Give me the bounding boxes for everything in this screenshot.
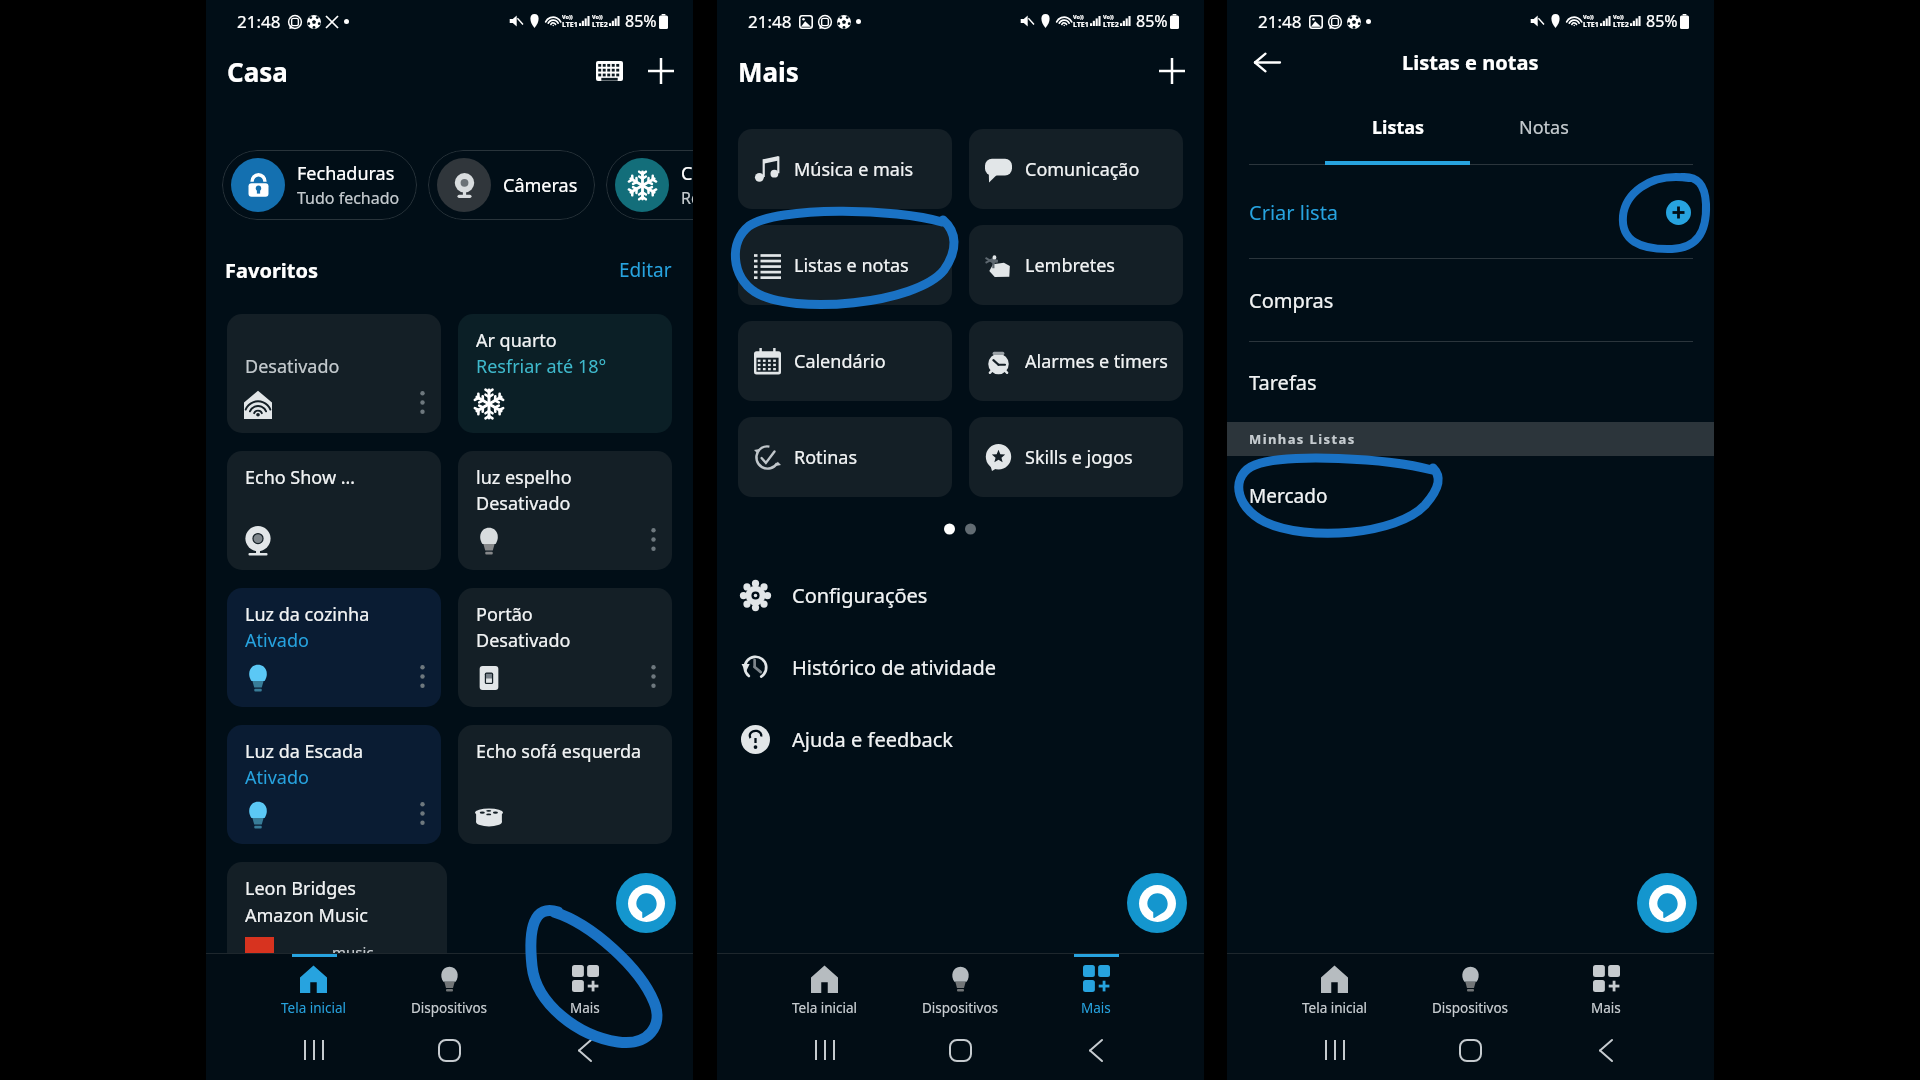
staticText: Vo)): [1583, 13, 1594, 20]
button[interactable]: Tarefas: [1227, 342, 1714, 422]
staticText: Música e mais: [794, 157, 914, 182]
button[interactable]: Câmeras: [428, 150, 595, 220]
button[interactable]: Home: [892, 1024, 1028, 1076]
button[interactable]: Home: [1402, 1024, 1538, 1076]
staticText: Luz da Escada: [245, 739, 364, 764]
button[interactable]: Mais: [1028, 954, 1164, 1024]
staticText: Alarmes e timers: [1025, 349, 1168, 374]
button[interactable]: Leon Bridges: [227, 862, 447, 981]
button[interactable]: Lembretes: [969, 225, 1183, 305]
staticText: Ativado: [245, 628, 309, 653]
button[interactable]: Luz da cozinha: [227, 588, 441, 707]
button[interactable]: Desativado: [227, 314, 441, 433]
button[interactable]: Música e mais: [738, 129, 952, 209]
staticText: Vo)): [592, 13, 603, 20]
button[interactable]: Recents: [246, 1024, 381, 1076]
staticText: Ar quarto: [476, 328, 557, 353]
button[interactable]: Home: [381, 1024, 517, 1076]
staticText: LTE2: [1613, 20, 1629, 30]
button[interactable]: Add: [643, 53, 679, 89]
button[interactable]: Compras: [1227, 259, 1714, 342]
button[interactable]: Rotinas: [738, 417, 952, 497]
staticText: Mais: [1591, 999, 1621, 1017]
staticText: Dispositivos: [1432, 999, 1509, 1017]
button[interactable]: Histórico de atividade: [717, 631, 1204, 703]
button[interactable]: Listas e notas: [738, 225, 952, 305]
staticText: Listas e notas: [794, 253, 909, 278]
staticText: Echo Show …: [245, 465, 355, 490]
button[interactable]: Back: [1028, 1024, 1164, 1076]
staticText: LTE2: [1103, 20, 1119, 30]
button[interactable]: Skills e jogos: [969, 417, 1183, 497]
button[interactable]: Alexa: [616, 873, 676, 933]
button[interactable]: Climatização: [606, 150, 693, 220]
staticText: Resfriar: [681, 187, 693, 209]
button[interactable]: Listas: [1326, 106, 1471, 148]
staticText: Mais: [570, 999, 600, 1017]
button[interactable]: Dispositivos: [1402, 954, 1538, 1024]
button[interactable]: Recents: [1267, 1024, 1402, 1076]
staticText: Editar: [619, 257, 672, 283]
staticText: Lembretes: [1025, 253, 1115, 278]
staticText: Luz da cozinha: [245, 602, 370, 627]
staticText: Desativado: [245, 354, 340, 379]
staticText: Climatização: [681, 161, 693, 186]
button[interactable]: Recents: [757, 1024, 892, 1076]
button[interactable]: Ar quarto: [458, 314, 672, 433]
button[interactable]: Luz da Escada: [227, 725, 441, 844]
button[interactable]: Mercado: [1227, 456, 1714, 536]
button[interactable]: Calendário: [738, 321, 952, 401]
staticText: Dispositivos: [411, 999, 488, 1017]
button[interactable]: Tela inicial: [246, 954, 381, 1024]
staticText: Vo)): [1103, 13, 1114, 20]
staticText: luz espelho: [476, 465, 572, 490]
button[interactable]: Tela inicial: [757, 954, 892, 1024]
staticText: Configurações: [792, 582, 928, 609]
button[interactable]: Tela inicial: [1267, 954, 1402, 1024]
button[interactable]: Alexa: [1637, 873, 1697, 933]
staticText: 21:48: [237, 10, 281, 33]
staticText: Criar lista: [1249, 199, 1339, 226]
staticText: Mais: [1081, 999, 1111, 1017]
button[interactable]: Back: [517, 1024, 653, 1076]
staticText: Ativado: [245, 765, 309, 790]
staticText: Listas: [1372, 115, 1425, 140]
staticText: music: [332, 942, 374, 962]
staticText: Notas: [1519, 115, 1569, 140]
staticText: 85%: [1136, 10, 1168, 32]
staticText: Desativado: [476, 491, 571, 516]
button[interactable]: Dispositivos: [892, 954, 1028, 1024]
staticText: Calendário: [794, 349, 886, 374]
button[interactable]: Alarmes e timers: [969, 321, 1183, 401]
staticText: Mercado: [1249, 483, 1328, 509]
button[interactable]: Alexa: [1127, 873, 1187, 933]
button[interactable]: Mais: [1538, 954, 1674, 1024]
staticText: Histórico de atividade: [792, 654, 996, 681]
button[interactable]: Configurações: [717, 559, 1204, 631]
button[interactable]: Add: [1154, 53, 1190, 89]
button[interactable]: Editar: [615, 254, 676, 286]
staticText: 21:48: [1258, 10, 1302, 33]
staticText: Mais: [738, 54, 799, 89]
button[interactable]: Echo Show …: [227, 451, 441, 570]
button[interactable]: Mais: [517, 954, 653, 1024]
button[interactable]: Ajuda e feedback: [717, 703, 1204, 775]
button[interactable]: Back: [1250, 45, 1284, 79]
button[interactable]: Notas: [1471, 106, 1616, 148]
button[interactable]: Back: [1538, 1024, 1674, 1076]
button[interactable]: Portão: [458, 588, 672, 707]
staticText: Tela inicial: [1302, 999, 1368, 1017]
button[interactable]: Echo sofá esquerda: [458, 725, 672, 844]
button[interactable]: Comunicação: [969, 129, 1183, 209]
button[interactable]: Keyboard: [591, 53, 627, 89]
staticText: 85%: [1646, 10, 1678, 32]
staticText: Vo)): [1073, 13, 1084, 20]
button[interactable]: Fechaduras: [222, 150, 417, 220]
staticText: LTE2: [592, 20, 608, 30]
button[interactable]: Criar lista: [1227, 165, 1714, 259]
button[interactable]: Dispositivos: [381, 954, 517, 1024]
button[interactable]: luz espelho: [458, 451, 672, 570]
staticText: Echo sofá esquerda: [476, 739, 642, 764]
staticText: Fechaduras: [297, 161, 395, 186]
staticText: Comunicação: [1025, 157, 1140, 182]
